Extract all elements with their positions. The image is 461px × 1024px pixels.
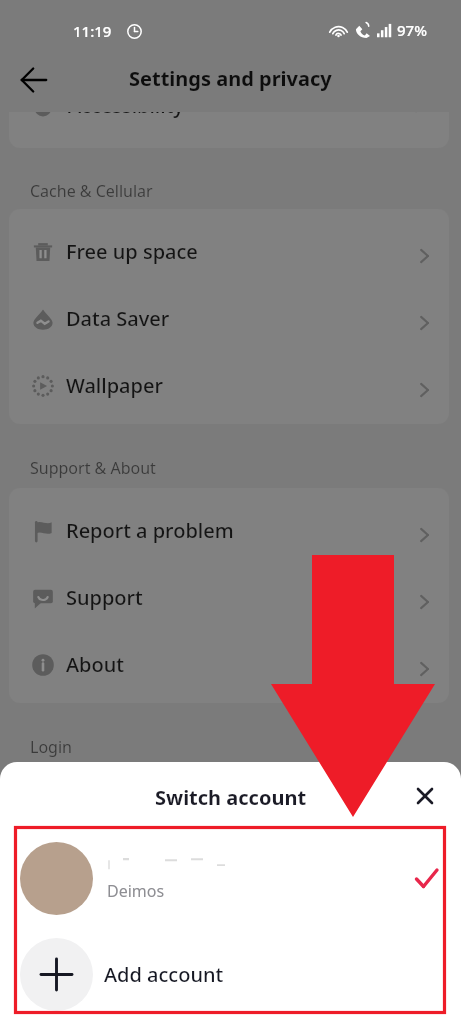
- button[interactable]: Wallpaper: [9, 352, 449, 419]
- staticText: Wallpaper: [66, 372, 163, 399]
- button[interactable]: Accessibility: [9, 112, 449, 148]
- staticText: Switch account: [155, 784, 307, 811]
- staticText: Settings and privacy: [129, 65, 332, 92]
- button[interactable]: Deimos: [0, 830, 461, 926]
- button[interactable]: About: [9, 631, 449, 698]
- staticText: Add account: [104, 961, 224, 988]
- staticText: 97%: [397, 20, 427, 40]
- staticText: 11:19: [73, 21, 112, 41]
- staticText: Support & About: [30, 457, 156, 479]
- button[interactable]: Add account: [0, 924, 461, 1024]
- staticText: Deimos: [107, 880, 165, 902]
- staticText: Data Saver: [66, 305, 170, 332]
- staticText: Cache & Cellular: [30, 180, 153, 202]
- staticText: Free up space: [66, 238, 198, 265]
- staticText: Support: [66, 584, 143, 611]
- button[interactable]: Data Saver: [9, 285, 449, 352]
- staticText: Login: [30, 736, 72, 758]
- button[interactable]: Close: [403, 774, 447, 818]
- button[interactable]: Report a problem: [9, 497, 449, 564]
- staticText: Accessibility: [68, 112, 184, 119]
- button[interactable]: Back: [12, 58, 56, 102]
- staticText: About: [66, 651, 124, 678]
- button[interactable]: Support: [9, 564, 449, 631]
- staticText: Report a problem: [66, 517, 234, 544]
- button[interactable]: Free up space: [9, 218, 449, 285]
